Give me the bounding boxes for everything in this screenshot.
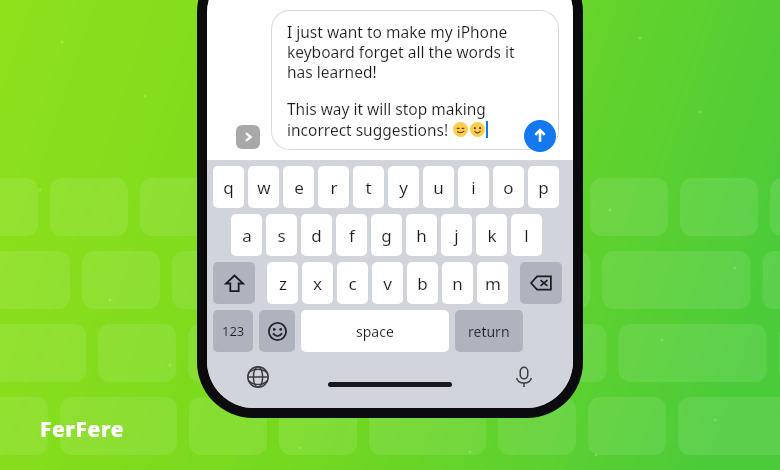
staticText: x: [313, 272, 322, 295]
staticText: f: [349, 224, 355, 247]
button[interactable]: p: [528, 166, 559, 208]
staticText: z: [279, 272, 287, 295]
staticText: a: [242, 224, 252, 247]
button[interactable]: Backspace: [520, 262, 562, 304]
button[interactable]: w: [248, 166, 279, 208]
staticText: k: [487, 224, 497, 247]
button[interactable]: j: [441, 214, 472, 256]
button[interactable]: f: [336, 214, 367, 256]
staticText: d: [311, 224, 322, 247]
button[interactable]: Emoji: [259, 310, 295, 352]
button[interactable]: s: [266, 214, 297, 256]
staticText: l: [524, 224, 529, 247]
button[interactable]: Expand: [236, 125, 260, 149]
button[interactable]: Shift: [213, 262, 255, 304]
staticText: incorrect suggestions!: [287, 119, 453, 140]
staticText: n: [452, 272, 463, 295]
staticText: i: [471, 176, 476, 199]
staticText: This way it will stop making: [287, 98, 486, 119]
button[interactable]: k: [476, 214, 507, 256]
button[interactable]: r: [318, 166, 349, 208]
button[interactable]: d: [301, 214, 332, 256]
button[interactable]: g: [371, 214, 402, 256]
button[interactable]: 123: [213, 310, 253, 352]
staticText: g: [381, 224, 392, 247]
staticText: y: [399, 176, 408, 199]
button[interactable]: o: [493, 166, 524, 208]
staticText: u: [433, 176, 444, 199]
button[interactable]: c: [337, 262, 368, 304]
staticText: b: [417, 272, 428, 295]
staticText: h: [416, 224, 427, 247]
button[interactable]: e: [283, 166, 314, 208]
staticText: e: [294, 176, 304, 199]
button[interactable]: l: [511, 214, 542, 256]
staticText: q: [223, 176, 234, 199]
staticText: s: [277, 224, 286, 247]
button[interactable]: m: [477, 262, 508, 304]
button[interactable]: b: [407, 262, 438, 304]
button[interactable]: u: [423, 166, 454, 208]
button[interactable]: Send: [524, 120, 556, 152]
button[interactable]: Dictate: [511, 364, 537, 390]
button[interactable]: space: [301, 310, 449, 352]
button[interactable]: n: [442, 262, 473, 304]
staticText: r: [330, 176, 338, 199]
button[interactable]: v: [372, 262, 403, 304]
button[interactable]: return: [455, 310, 523, 352]
staticText: m: [485, 272, 501, 295]
staticText: v: [383, 272, 392, 295]
staticText: o: [503, 176, 514, 199]
button[interactable]: y: [388, 166, 419, 208]
staticText: c: [348, 272, 357, 295]
staticText: I just want to make my iPhone keyboard f…: [287, 21, 515, 82]
button[interactable]: a: [231, 214, 262, 256]
button[interactable]: i: [458, 166, 489, 208]
button[interactable]: q: [213, 166, 244, 208]
staticText: w: [257, 176, 271, 199]
staticText: 123: [222, 322, 245, 340]
button[interactable]: t: [353, 166, 384, 208]
staticText: FerFere: [40, 415, 125, 444]
button[interactable]: x: [302, 262, 333, 304]
button[interactable]: z: [267, 262, 298, 304]
button[interactable]: Switch keyboard: [245, 364, 271, 390]
staticText: t: [365, 176, 372, 199]
staticText: space: [356, 322, 394, 341]
staticText: j: [454, 224, 459, 247]
staticText: return: [468, 322, 510, 341]
button[interactable]: h: [406, 214, 437, 256]
button[interactable]: I just want to make my iPhone keyboard f…: [271, 10, 559, 150]
staticText: p: [538, 176, 549, 199]
